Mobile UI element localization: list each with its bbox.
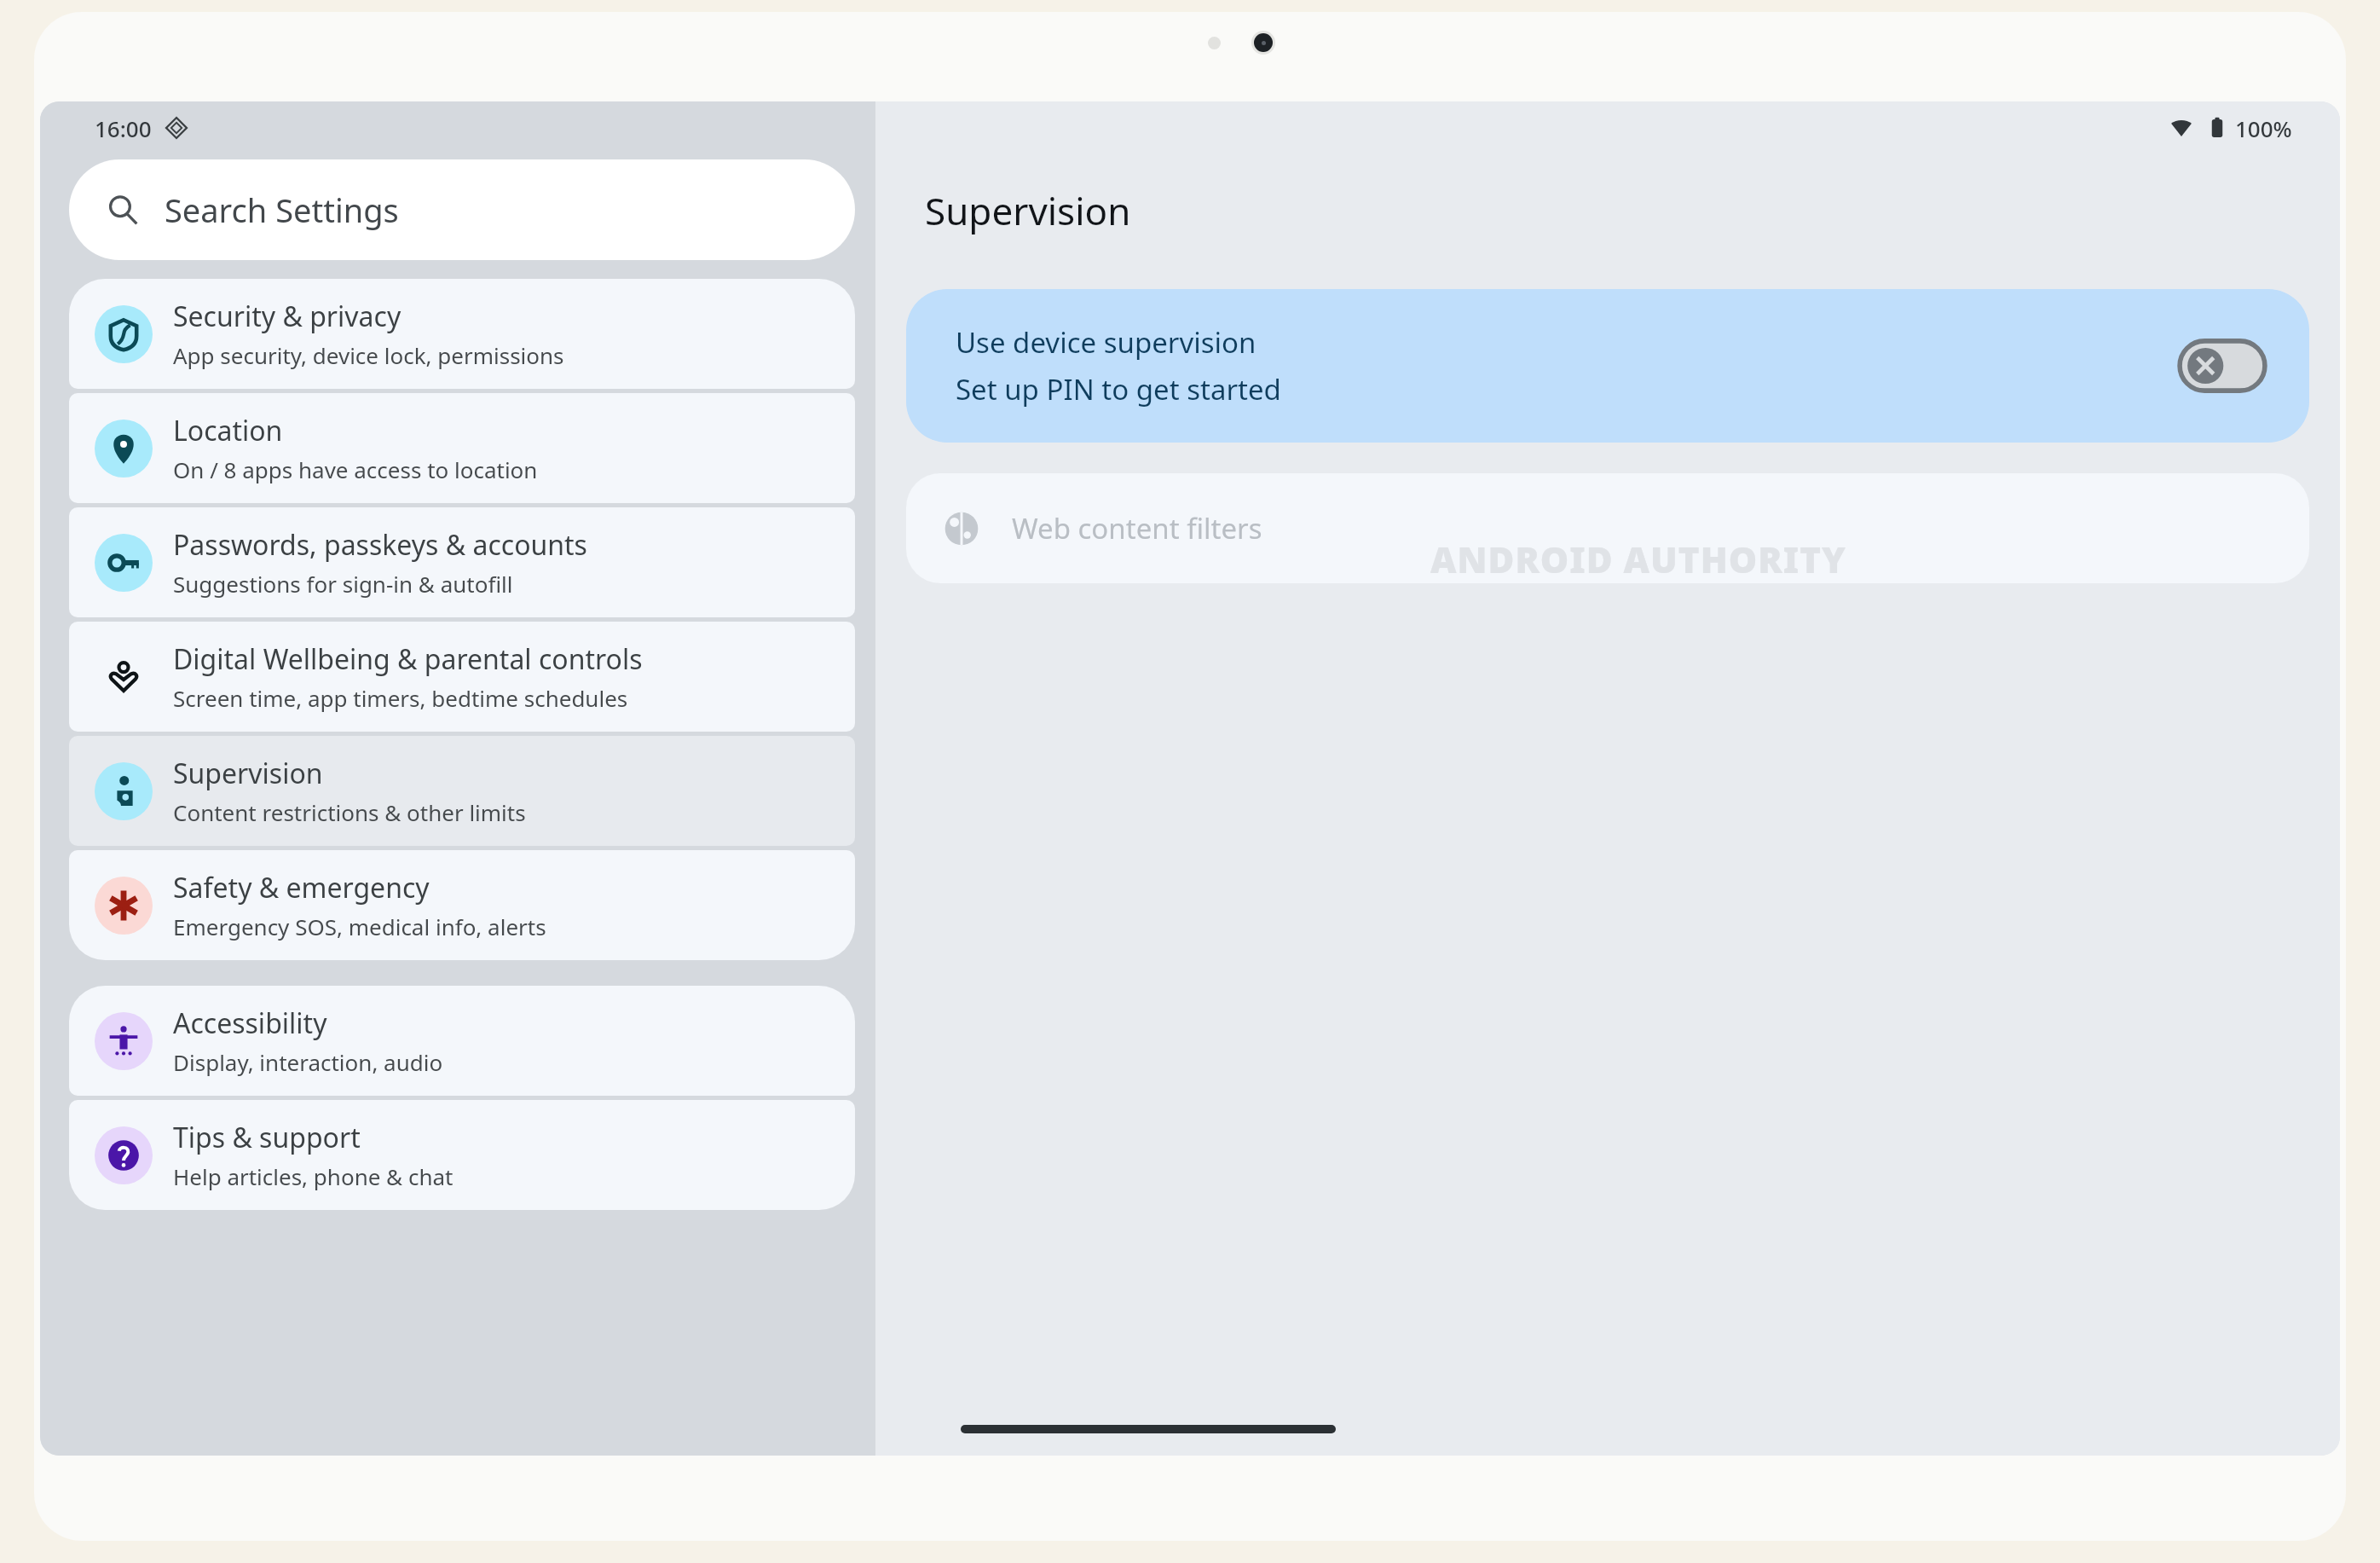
staticText: Digital Wellbeing & parental controls	[173, 640, 643, 678]
staticText: Web content filters	[1012, 509, 1262, 547]
staticText: Content restrictions & other limits	[173, 797, 526, 827]
button[interactable]: Search Settings	[69, 159, 855, 260]
staticText: Security & privacy	[173, 298, 401, 335]
button[interactable]: Location	[69, 393, 855, 503]
staticText: Supervision	[173, 755, 323, 792]
staticText: 100%	[2235, 113, 2292, 143]
staticText: Safety & emergency	[173, 869, 430, 906]
staticText: Location	[173, 412, 283, 449]
button[interactable]: Use device supervision toggle, off	[2178, 339, 2267, 392]
button[interactable]: Use device supervision	[906, 289, 2309, 443]
staticText: Accessibility	[173, 1004, 327, 1042]
staticText: Suggestions for sign-in & autofill	[173, 569, 513, 599]
button[interactable]: Tips & support	[69, 1100, 855, 1210]
staticText: App security, device lock, permissions	[173, 340, 564, 370]
button[interactable]: Accessibility	[69, 986, 855, 1096]
staticText: 16:00	[95, 113, 152, 143]
button[interactable]: Security & privacy	[69, 279, 855, 389]
staticText: Supervision	[925, 185, 1131, 236]
staticText: Passwords, passkeys & accounts	[173, 526, 587, 564]
staticText: Emergency SOS, medical info, alerts	[173, 912, 546, 941]
staticText: On / 8 apps have access to location	[173, 454, 538, 484]
staticText: ANDROID AUTHORITY	[906, 535, 2340, 583]
staticText: Set up PIN to get started	[956, 370, 1281, 408]
button[interactable]: Supervision	[69, 736, 855, 846]
staticText: Search Settings	[165, 188, 399, 232]
staticText: Use device supervision	[956, 323, 1256, 362]
staticText: Tips & support	[173, 1119, 361, 1156]
staticText: Display, interaction, audio	[173, 1047, 443, 1077]
staticText: Screen time, app timers, bedtime schedul…	[173, 683, 628, 713]
button[interactable]: Digital Wellbeing & parental controls	[69, 622, 855, 732]
staticText: Help articles, phone & chat	[173, 1161, 453, 1191]
button[interactable]: Safety & emergency	[69, 850, 855, 960]
button[interactable]: Passwords, passkeys & accounts	[69, 507, 855, 617]
button[interactable]: Web content filters	[906, 473, 2309, 583]
